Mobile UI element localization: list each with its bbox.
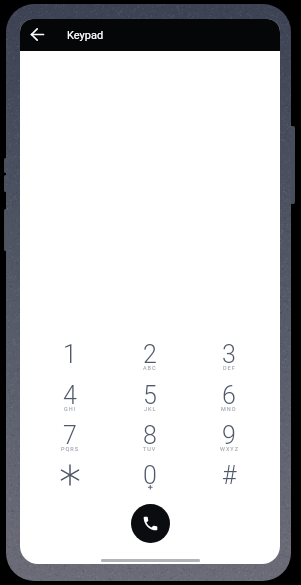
staticText: 6 xyxy=(222,381,236,410)
staticText: 5 xyxy=(143,381,157,410)
button[interactable] xyxy=(194,374,264,415)
staticText: 8 xyxy=(143,421,157,450)
button[interactable] xyxy=(194,333,264,374)
staticText: 1 xyxy=(63,340,77,369)
button[interactable] xyxy=(194,414,264,455)
button[interactable] xyxy=(131,504,170,543)
button[interactable] xyxy=(35,333,105,374)
staticText: JKL xyxy=(144,406,157,412)
staticText: TUV xyxy=(143,446,157,452)
button[interactable] xyxy=(194,454,264,495)
button[interactable] xyxy=(25,22,49,46)
staticText: 4 xyxy=(63,381,77,410)
button[interactable] xyxy=(35,454,105,495)
staticText: GHI xyxy=(64,406,77,412)
staticText: MNO xyxy=(221,406,237,412)
button[interactable] xyxy=(115,414,185,455)
button[interactable] xyxy=(115,374,185,415)
staticText: # xyxy=(222,461,237,490)
staticText: 0 xyxy=(143,461,157,490)
staticText: 2 xyxy=(143,340,157,369)
staticText: PQRS xyxy=(61,446,79,452)
button[interactable] xyxy=(35,374,105,415)
button[interactable] xyxy=(115,333,185,374)
staticText: 9 xyxy=(222,421,236,450)
staticText: 3 xyxy=(222,340,236,369)
button[interactable] xyxy=(115,454,185,495)
staticText: Keypad xyxy=(67,29,104,42)
button[interactable] xyxy=(35,414,105,455)
staticText: DEF xyxy=(223,365,236,371)
staticText: WXYZ xyxy=(220,446,239,452)
staticText: ABC xyxy=(143,365,157,371)
staticText: 7 xyxy=(63,421,77,450)
